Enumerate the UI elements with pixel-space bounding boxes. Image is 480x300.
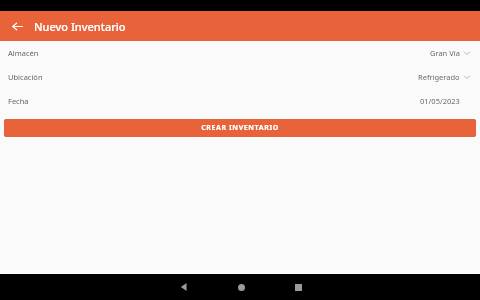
staticText: Nuevo Inventario: [34, 19, 126, 34]
button[interactable]: Recent apps: [285, 274, 311, 300]
staticText: Fecha: [8, 96, 29, 106]
staticText: Almacén: [8, 48, 39, 58]
staticText: Gran Vía: [430, 48, 460, 58]
button[interactable]: CREAR INVENTARIO: [4, 119, 476, 137]
button[interactable]: Fecha: [0, 89, 480, 113]
staticText: Ubicación: [8, 72, 43, 82]
button[interactable]: Home: [228, 274, 254, 300]
button[interactable]: Back: [6, 15, 28, 37]
staticText: CREAR INVENTARIO: [201, 123, 279, 133]
staticText: 01/05/2023: [420, 96, 460, 106]
button[interactable]: Back: [171, 274, 197, 300]
button[interactable]: Almacén: [0, 41, 480, 65]
staticText: Refrigerado: [418, 72, 460, 82]
button[interactable]: Ubicación: [0, 65, 480, 89]
